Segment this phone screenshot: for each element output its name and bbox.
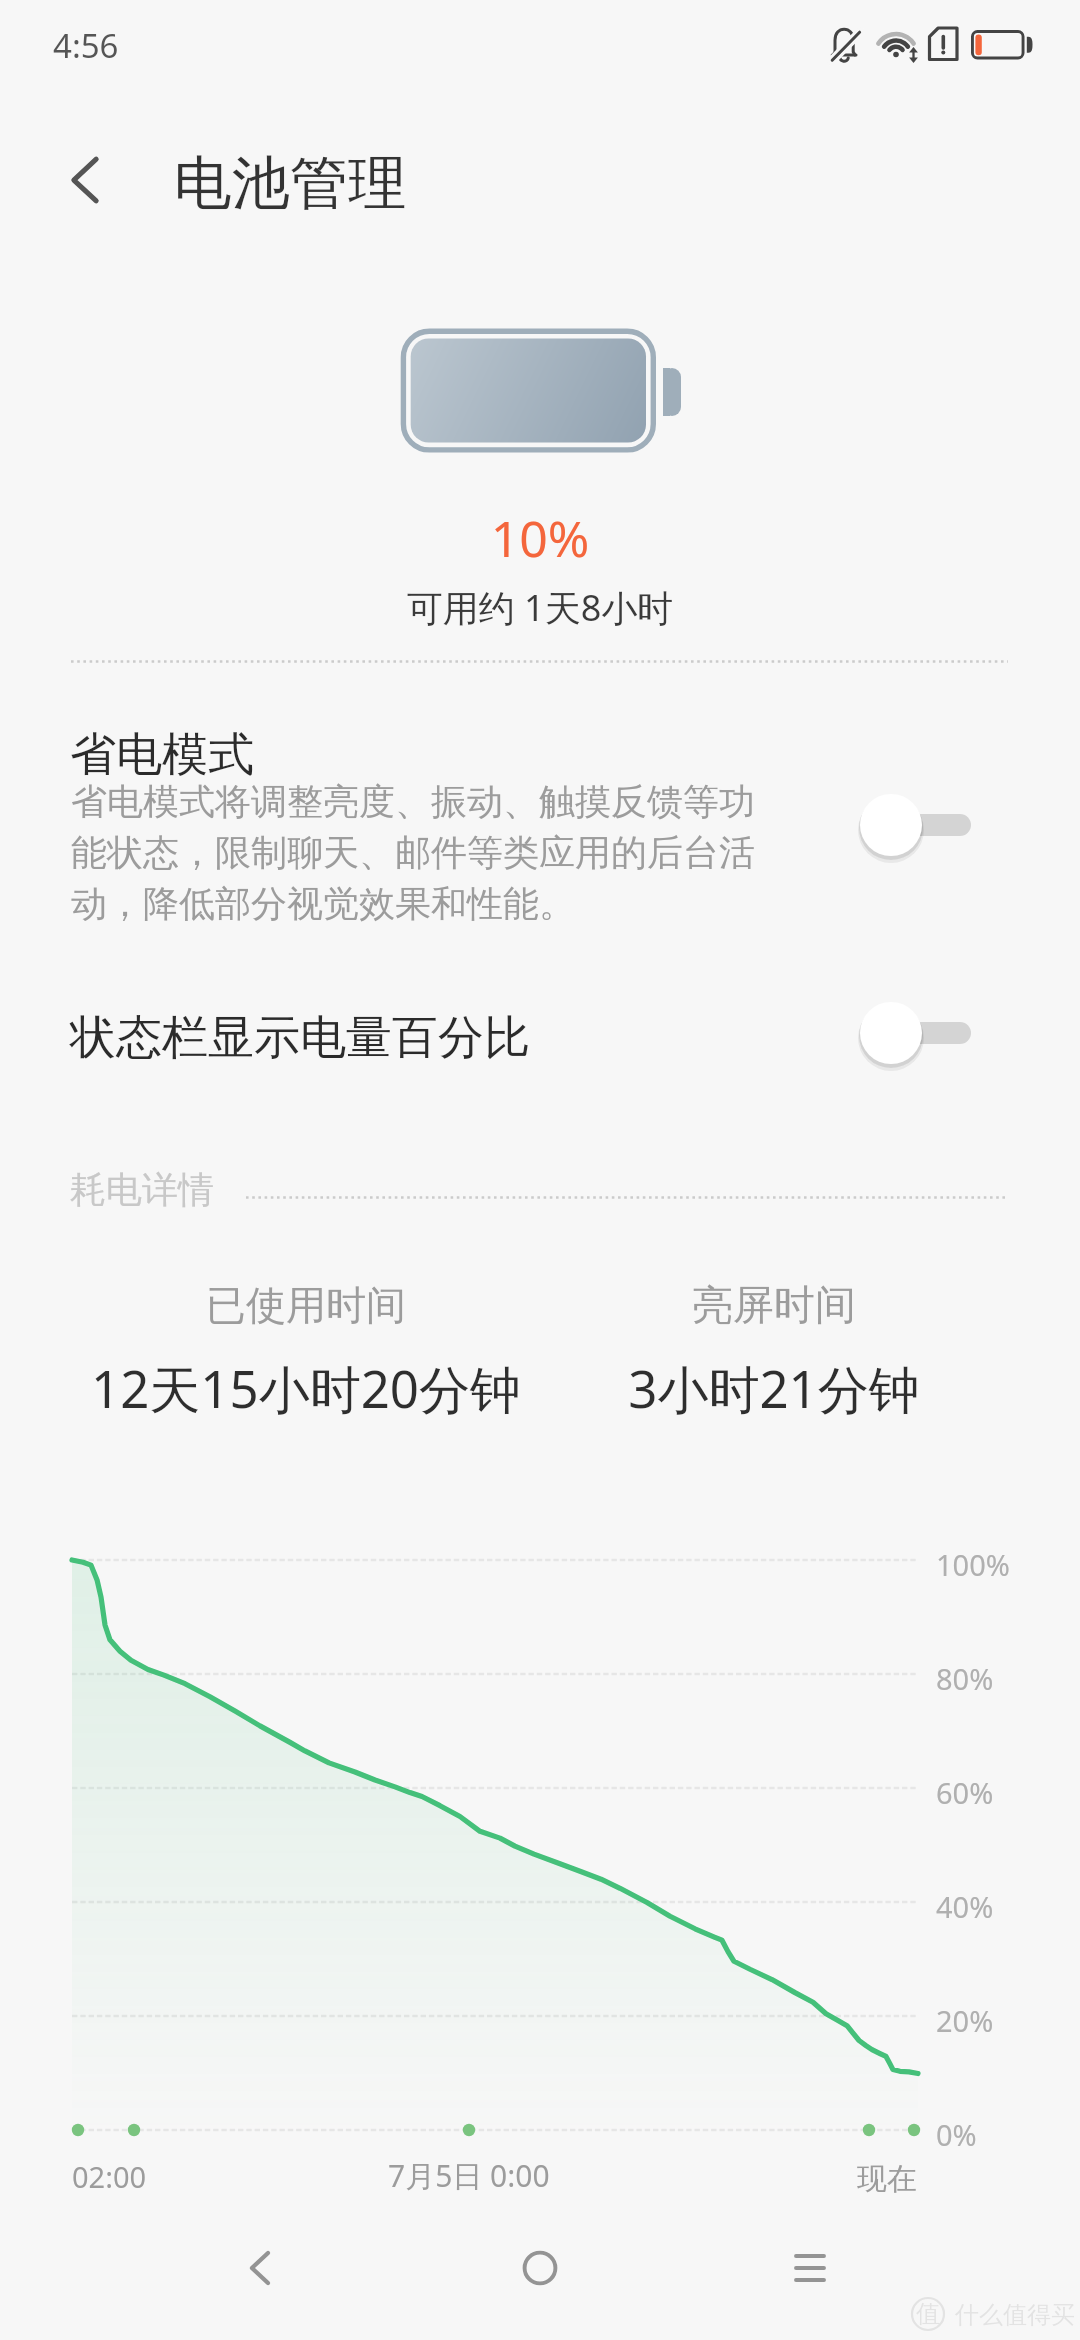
staticText: 20% bbox=[936, 2001, 994, 2040]
button[interactable]: 省电模式开关 bbox=[836, 777, 1014, 873]
staticText: 10% bbox=[240, 504, 840, 572]
staticText: 什么值得买 bbox=[955, 2300, 1075, 2330]
staticText: 可用约 1天8小时 bbox=[240, 583, 840, 632]
staticText: 0% bbox=[936, 2115, 977, 2154]
staticText: 02:00 bbox=[72, 2157, 147, 2196]
button[interactable]: 省电模式 bbox=[0, 700, 1080, 955]
staticText: 60% bbox=[936, 1773, 994, 1812]
staticText: 3小时21分钟 bbox=[474, 1353, 1074, 1423]
staticText: 现在 bbox=[857, 2160, 917, 2198]
staticText: 省电模式 bbox=[70, 726, 254, 784]
staticText: 40% bbox=[936, 1887, 994, 1926]
button[interactable]: Back bbox=[39, 136, 133, 230]
staticText: 已使用时间 bbox=[6, 1280, 606, 1330]
staticText: 亮屏时间 bbox=[474, 1280, 1074, 1332]
staticText: 值 bbox=[916, 2299, 940, 2329]
staticText: 100% bbox=[936, 1545, 1010, 1584]
staticText: 80% bbox=[936, 1659, 994, 1698]
staticText: 状态栏显示电量百分比 bbox=[70, 1009, 530, 1067]
staticText: 电池管理 bbox=[174, 147, 406, 220]
staticText: 12天15小时20分钟 bbox=[6, 1353, 606, 1423]
button[interactable]: 状态栏显示电量百分比 bbox=[0, 975, 1080, 1093]
button[interactable]: 状态栏显示电量百分比开关 bbox=[836, 985, 1014, 1081]
staticText: 4:56 bbox=[53, 23, 119, 68]
staticText: 省电模式将调整亮度、振动、触摸反馈等功能状态，限制聊天、邮件等类应用的后台活动，… bbox=[71, 779, 771, 927]
button[interactable]: Back bbox=[216, 2224, 304, 2312]
staticText: 7月5日 0:00 bbox=[388, 2155, 550, 2196]
staticText: 耗电详情 bbox=[70, 1167, 214, 1212]
button[interactable]: Recents bbox=[766, 2224, 854, 2312]
button[interactable]: Home bbox=[496, 2224, 584, 2312]
